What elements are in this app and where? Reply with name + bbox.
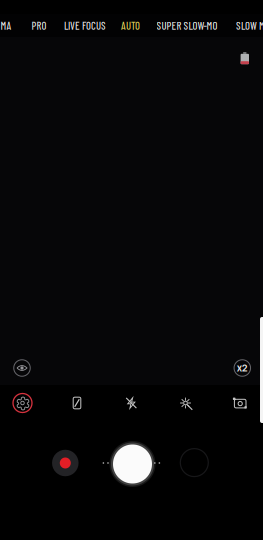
button[interactable]: Gallery [177,446,211,480]
staticText: AUTO [121,19,140,32]
staticText: PRO [31,19,46,32]
button[interactable]: LIVE FOCUS [61,14,109,37]
button[interactable]: Bixby Vision [11,357,33,379]
button[interactable]: Take photo [108,440,156,488]
button[interactable]: Aspect ratio [66,392,88,414]
button[interactable]: Beauty effects [174,392,196,414]
button[interactable]: Switch camera [229,392,251,414]
button[interactable]: Zoom 2x [231,357,253,379]
staticText: SLOW M [236,19,263,32]
staticText: LIVE FOCUS [64,19,106,32]
staticText: SUPER SLOW-MO [156,19,217,32]
button[interactable]: Flash off [120,392,142,414]
staticText: x2 [237,362,248,374]
button[interactable]: SUPER SLOW-MO [154,14,220,37]
staticText: MA [0,19,11,32]
button[interactable]: AUTO [117,14,143,37]
button[interactable]: SLOW M [233,14,263,37]
button[interactable]: Record video [48,446,82,480]
button[interactable]: PRO [28,14,50,37]
button[interactable]: Camera settings [11,392,33,414]
button[interactable]: MA [0,14,15,37]
